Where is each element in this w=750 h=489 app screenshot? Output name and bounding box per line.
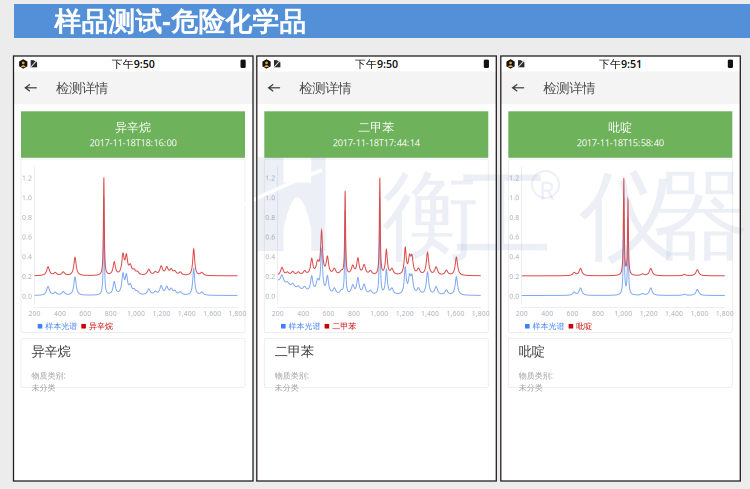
staticText: 200 [28,309,40,318]
staticText: 1,400 [178,309,196,318]
staticText: 0.0 [265,292,275,300]
staticText: 样品测试-危险化学品 [54,3,306,39]
staticText: 2017-11-18T15:58:40 [577,136,664,149]
staticText: 600 [566,309,578,318]
staticText: 800 [592,309,604,318]
staticText: 600 [79,309,91,318]
staticText: 检测详情 [56,80,108,96]
staticText: 样本光谱 [289,321,321,331]
staticText: 二甲苯 [358,120,394,135]
staticText: 工 [455,157,552,277]
staticText: 1.2 [265,174,275,182]
staticText: R [539,173,555,207]
staticText: 0.4 [265,252,275,261]
staticText: 0.6 [509,233,519,241]
staticText: 物质类别: [275,370,309,381]
staticText: 样本光谱 [533,321,565,331]
staticText: 样本光谱 [45,321,77,331]
staticText: 200 [272,309,284,318]
staticText: 检测详情 [543,80,595,96]
staticText: 1,400 [421,309,439,318]
staticText: 1,200 [152,309,170,318]
staticText: 仪 [579,157,676,277]
staticText: 1,600 [446,309,464,318]
button[interactable]: Back [501,71,740,104]
staticText: 1,600 [690,309,708,318]
staticText: 1.2 [22,174,32,182]
staticText: 二甲苯 [332,321,356,331]
staticText: 1.2 [509,174,519,182]
staticText: 吡啶 [608,120,632,135]
staticText: 下午9:51 [599,57,642,71]
staticText: 0.2 [509,272,519,281]
button[interactable]: Back [13,71,253,104]
staticText: 异辛烷 [31,343,70,360]
staticText: 物质类别: [31,370,65,381]
staticText: 1,600 [203,309,221,318]
staticText: 1,200 [396,309,414,318]
staticText: 0.6 [22,233,32,241]
staticText: 1,000 [614,309,632,318]
staticText: 800 [348,309,360,318]
staticText: 2017-11-18T17:44:14 [333,136,420,149]
staticText: 200 [516,309,528,318]
staticText: 检测详情 [299,80,351,96]
staticText: 器 [652,157,749,277]
staticText: 吡啶 [576,321,592,331]
staticText: 400 [541,309,553,318]
staticText: 0.6 [265,233,275,241]
staticText: 未分类 [519,383,543,393]
staticText: 1,800 [716,309,734,318]
staticText: 下午9:50 [355,57,398,71]
staticText: 0.0 [22,292,32,300]
staticText: 0.8 [265,213,275,222]
staticText: 800 [105,309,117,318]
staticText: 0.8 [509,213,519,222]
staticText: 下午9:50 [112,57,155,71]
staticText: 1,800 [228,309,246,318]
staticText: 2017-11-18T18:16:00 [89,136,176,149]
staticText: 0.4 [22,252,32,261]
staticText: 二甲苯 [275,343,314,360]
staticText: 衡 [382,157,479,277]
staticText: 0.8 [22,213,32,222]
staticText: 1,000 [127,309,145,318]
staticText: 异辛烷 [89,321,113,331]
staticText: 1,000 [370,309,388,318]
staticText: 1.0 [509,193,519,202]
staticText: 600 [323,309,335,318]
staticText: 1,200 [640,309,658,318]
staticText: 0.2 [265,272,275,281]
staticText: 1.0 [265,193,275,202]
staticText: 400 [54,309,66,318]
staticText: 0.2 [22,272,32,281]
staticText: 未分类 [31,383,55,393]
staticText: 1,400 [665,309,683,318]
staticText: 异辛烷 [115,120,151,135]
staticText: 物质类别: [519,370,553,381]
staticText: 1,800 [472,309,490,318]
staticText: 1.0 [22,193,32,202]
staticText: 400 [297,309,309,318]
staticText: 0.4 [509,252,519,261]
staticText: 未分类 [275,383,299,393]
staticText: 0.0 [509,292,519,300]
button[interactable]: Back [257,71,496,104]
staticText: 吡啶 [519,343,545,360]
